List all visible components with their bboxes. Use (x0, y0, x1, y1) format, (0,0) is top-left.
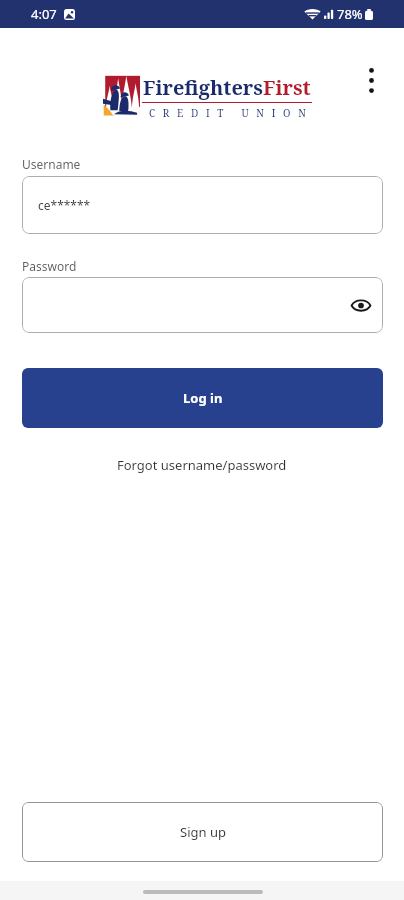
staticText: Password (22, 258, 77, 274)
staticText: Username (22, 156, 81, 172)
staticText: Firefighters (143, 74, 263, 101)
button[interactable]: Forgot username/password (107, 450, 297, 480)
staticText: Sign up (180, 823, 226, 841)
button[interactable]: ce****** (22, 176, 383, 234)
staticText: CREDIT UNION (149, 106, 314, 120)
button[interactable]: Show password (22, 277, 383, 333)
staticText: 4:07 (31, 5, 57, 23)
staticText: Forgot username/password (117, 456, 287, 474)
button[interactable]: More options (351, 60, 391, 100)
button[interactable]: Log in (22, 368, 383, 428)
staticText: ce****** (38, 197, 91, 213)
staticText: Log in (183, 389, 223, 407)
staticText: First (263, 74, 311, 101)
staticText: 78% (337, 5, 363, 23)
button[interactable]: Show password (343, 287, 379, 323)
button[interactable]: Sign up (22, 802, 383, 862)
